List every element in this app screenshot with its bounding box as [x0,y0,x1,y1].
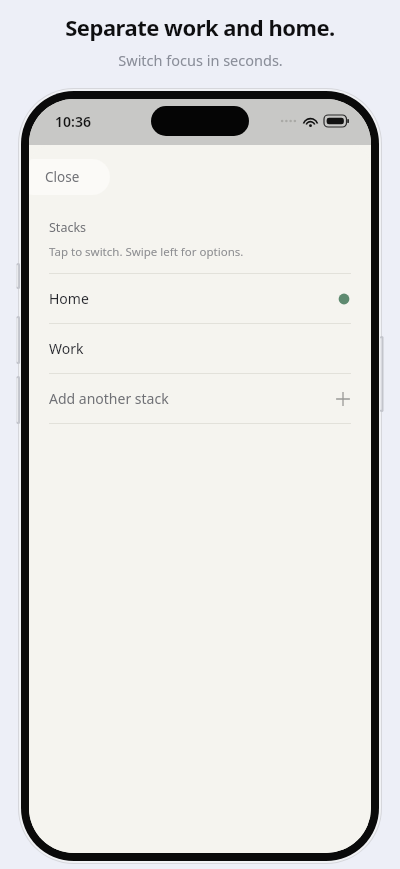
button[interactable]: Close [29,159,110,195]
other: Active stack [337,292,351,306]
staticText: Stacks [49,219,87,236]
button[interactable]: Work [49,324,351,373]
staticText: Tap to switch. Swipe left for options. [49,244,244,260]
staticText: Switch focus in seconds. [118,50,283,70]
staticText: Add another stack [49,389,335,408]
staticText: 10:36 [55,112,91,131]
staticText: Close [45,168,80,186]
button[interactable]: Add another stack [49,374,351,423]
other: Add stack [335,391,351,407]
staticText: Home [49,289,337,308]
button[interactable]: Home [49,274,351,323]
staticText: Work [49,339,337,358]
staticText: Separate work and home. [65,12,335,42]
